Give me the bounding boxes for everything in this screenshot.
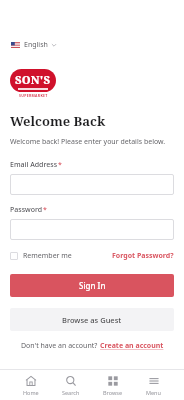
button[interactable]: Search xyxy=(62,372,80,399)
button[interactable]: Browse as Guest xyxy=(10,308,174,331)
staticText: Create an account xyxy=(100,341,164,351)
staticText: English xyxy=(24,40,48,50)
button[interactable]: Forgot Password? xyxy=(112,249,174,263)
staticText: Browse xyxy=(103,389,123,396)
staticText: SUPERMARKET xyxy=(19,93,48,98)
button[interactable]: Browse xyxy=(103,372,123,399)
staticText: Password xyxy=(10,205,43,215)
button[interactable]: Create an account xyxy=(100,341,164,351)
staticText: Welcome back! Please enter your details … xyxy=(10,137,166,147)
staticText: SON'S xyxy=(15,72,51,87)
button[interactable]: Home xyxy=(23,372,39,399)
staticText: Search xyxy=(62,389,80,396)
button[interactable]: English xyxy=(10,38,58,52)
button[interactable]: Remember me xyxy=(10,249,72,263)
staticText: Email Address xyxy=(10,160,58,170)
staticText: Home xyxy=(23,389,39,396)
staticText: Remember me xyxy=(23,251,72,261)
staticText: Don't have an account? xyxy=(21,341,100,351)
staticText: Browse as Guest xyxy=(62,315,122,325)
button[interactable] xyxy=(10,174,174,195)
button[interactable]: Menu xyxy=(146,372,161,399)
staticText: Menu xyxy=(146,389,161,396)
staticText: Welcome Back xyxy=(10,112,106,130)
staticText: Forgot Password? xyxy=(112,251,174,261)
button[interactable]: Sign In xyxy=(10,274,174,297)
staticText: Sign In xyxy=(79,280,106,291)
staticText: * xyxy=(58,160,62,170)
button[interactable] xyxy=(10,219,174,240)
staticText: * xyxy=(43,205,47,215)
